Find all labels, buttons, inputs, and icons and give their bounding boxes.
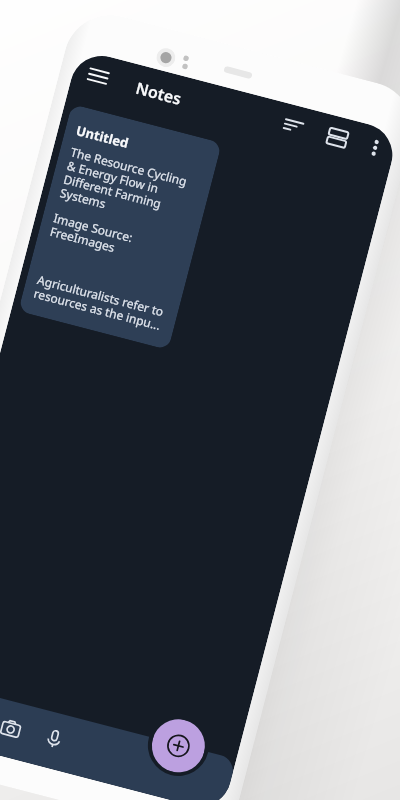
button[interactable]: Voice note <box>34 719 73 758</box>
button[interactable]: Menu <box>81 58 115 93</box>
staticText: Notes <box>133 77 184 110</box>
staticText: Agriculturalists refer to resources as t… <box>32 271 167 334</box>
staticText: Untitled <box>74 121 131 152</box>
button[interactable]: Untitled <box>18 104 222 350</box>
staticText: Image Source: FreeImages <box>48 209 183 272</box>
button[interactable]: New note <box>146 713 211 778</box>
button[interactable]: Take photo <box>0 708 31 747</box>
button[interactable]: Change layout <box>320 121 354 155</box>
button[interactable]: More options <box>358 130 392 164</box>
button[interactable]: Sort <box>276 109 310 143</box>
staticText: The Resource Cycling & Energy Flow in Di… <box>58 143 200 234</box>
